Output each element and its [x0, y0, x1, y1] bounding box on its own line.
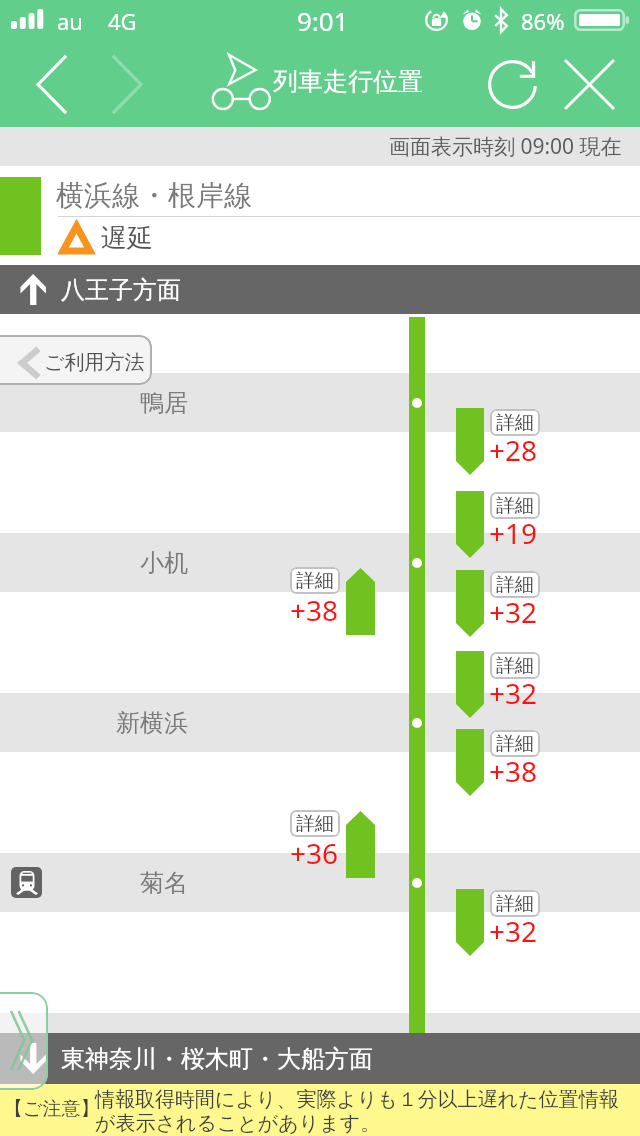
staticText: 八王子方面: [61, 275, 181, 305]
button[interactable]: 詳細: [490, 730, 540, 757]
staticText: 86%: [521, 6, 565, 36]
staticText: 東神奈川・桜木町・大船方面: [61, 1044, 373, 1074]
button[interactable]: Forward: [98, 55, 156, 113]
staticText: +32: [489, 674, 538, 712]
button[interactable]: 詳細: [490, 652, 540, 679]
button[interactable]: 八王子方面: [0, 265, 640, 314]
staticText: ご利用方法: [44, 350, 145, 375]
button[interactable]: 菊名: [0, 853, 640, 912]
staticText: 新横浜: [0, 708, 188, 738]
button[interactable]: 新横浜: [0, 693, 640, 752]
button[interactable]: 東神奈川・桜木町・大船方面: [0, 1033, 640, 1084]
button[interactable]: ご利用方法: [0, 335, 152, 385]
button[interactable]: 詳細: [290, 810, 340, 837]
staticText: 4G: [108, 6, 137, 36]
staticText: 【ご注意】: [4, 1097, 100, 1121]
button[interactable]: 詳細: [290, 567, 340, 594]
staticText: 小机: [0, 548, 188, 578]
button[interactable]: Back: [22, 55, 80, 113]
staticText: 遅延: [101, 222, 153, 255]
staticText: 詳細: [296, 812, 334, 836]
staticText: 画面表示時刻 09:00 現在: [389, 132, 622, 161]
button[interactable]: 詳細: [490, 492, 540, 519]
staticText: +19: [489, 514, 538, 552]
staticText: 詳細: [496, 494, 534, 518]
staticText: +32: [489, 593, 538, 631]
button[interactable]: Close: [560, 55, 618, 113]
staticText: +28: [489, 431, 538, 469]
button[interactable]: 詳細: [490, 890, 540, 917]
staticText: +36: [170, 834, 338, 872]
button[interactable]: Show more: [0, 992, 48, 1090]
button[interactable]: 鴨居: [0, 373, 640, 432]
staticText: au: [57, 6, 83, 36]
staticText: 詳細: [496, 892, 534, 916]
staticText: 菊名: [0, 868, 188, 898]
staticText: 詳細: [496, 573, 534, 597]
staticText: +32: [489, 912, 538, 950]
button[interactable]: 詳細: [490, 571, 540, 598]
staticText: 詳細: [496, 732, 534, 756]
staticText: 9:01: [297, 3, 349, 38]
staticText: 列車走行位置: [273, 66, 423, 97]
staticText: 詳細: [496, 654, 534, 678]
button[interactable]: 詳細: [490, 409, 540, 436]
button[interactable]: Reload: [483, 55, 541, 113]
staticText: 鴨居: [0, 388, 188, 418]
button[interactable]: 小机: [0, 533, 640, 592]
staticText: +38: [170, 591, 338, 629]
staticText: +38: [489, 752, 538, 790]
staticText: 横浜線・根岸線: [56, 178, 252, 213]
staticText: 詳細: [296, 569, 334, 593]
staticText: 情報取得時間により、実際よりも１分以上遅れた位置情報が表示されることがあります。: [95, 1087, 629, 1136]
staticText: 詳細: [496, 411, 534, 435]
